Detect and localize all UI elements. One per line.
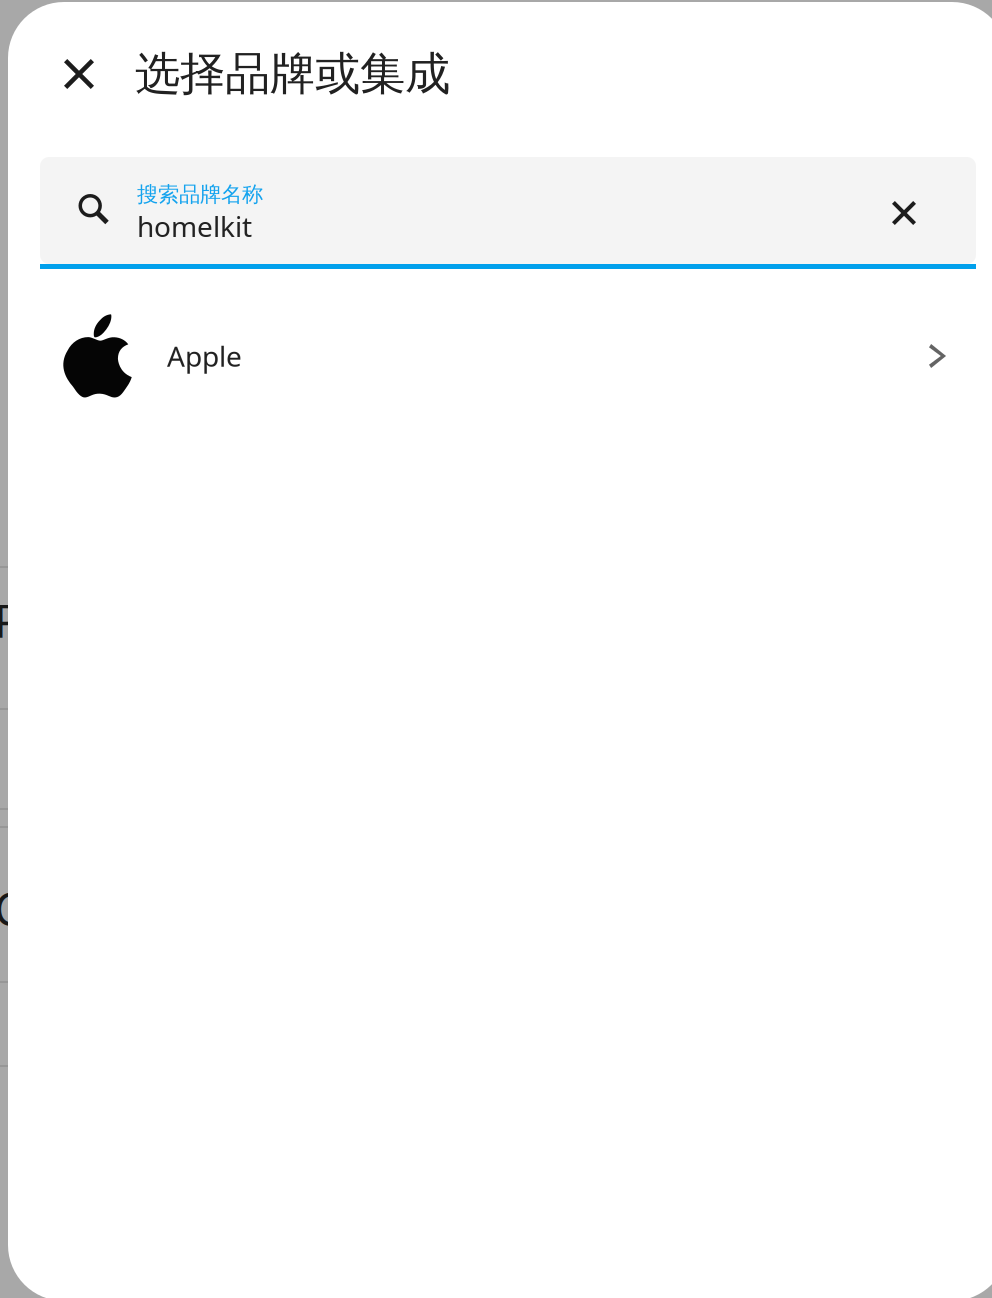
staticText: Apple	[167, 337, 242, 375]
staticText: homelkit	[137, 207, 252, 245]
staticText: 搜索品牌名称	[137, 181, 263, 207]
button[interactable]: Clear search	[873, 177, 935, 244]
button[interactable]: Close	[46, 41, 112, 107]
staticText: P	[0, 590, 21, 650]
staticText: C	[0, 878, 23, 938]
button[interactable]: Apple	[8, 295, 992, 417]
staticText: 选择品牌或集成	[135, 46, 450, 102]
